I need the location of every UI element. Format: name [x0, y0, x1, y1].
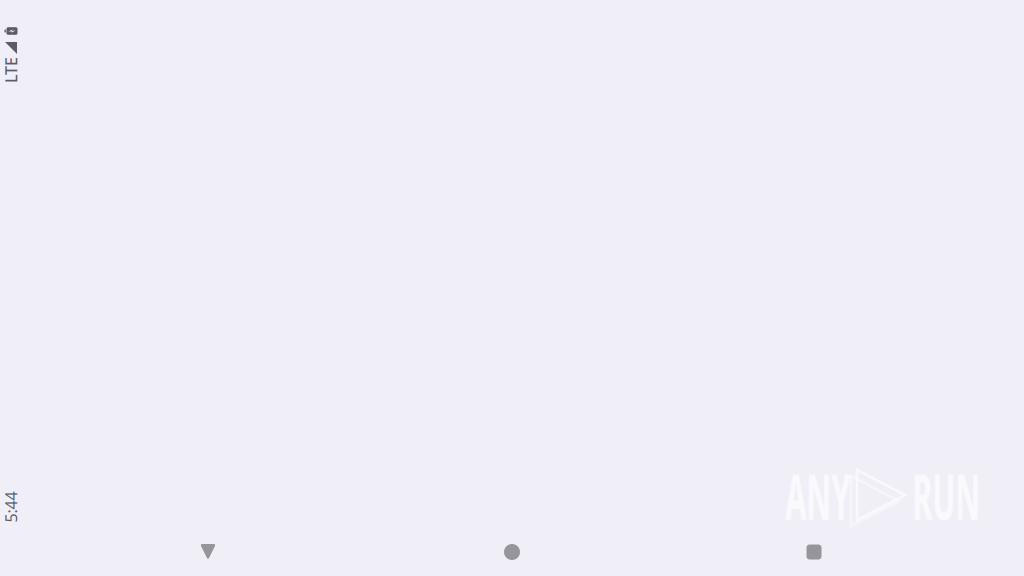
button[interactable]: Home [484, 528, 540, 576]
staticText: ANY [786, 476, 851, 516]
staticText: ANY [785, 475, 850, 515]
button[interactable]: Back [180, 528, 236, 576]
staticText: LTE [0, 59, 24, 81]
staticText: RUN [912, 475, 980, 515]
staticText: 5:44 [0, 496, 26, 518]
button[interactable]: Recent apps [786, 528, 842, 576]
staticText: RUN [913, 476, 981, 516]
